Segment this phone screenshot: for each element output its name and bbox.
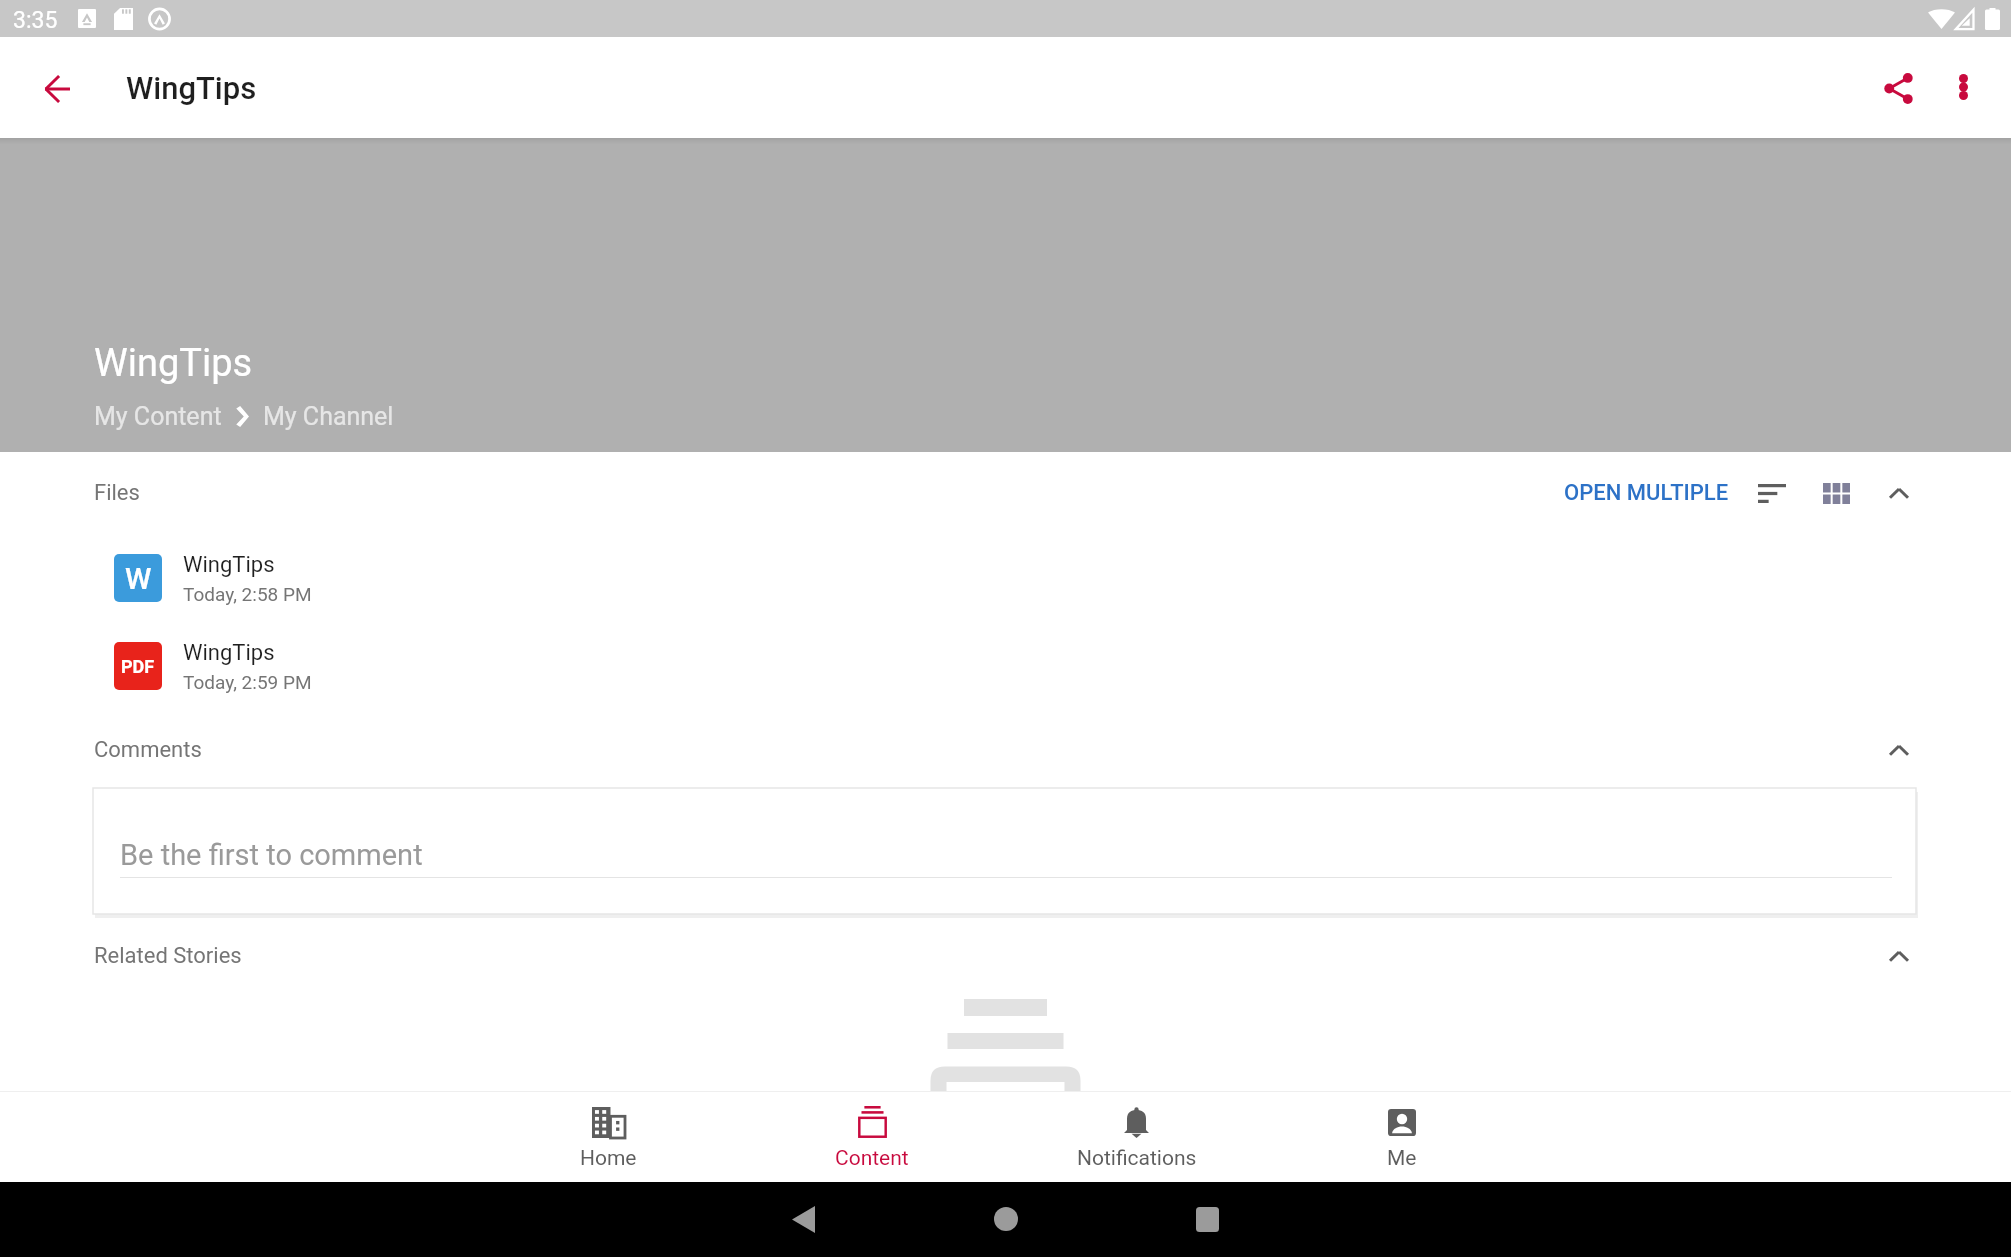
button[interactable]: My Channel bbox=[263, 402, 394, 431]
button[interactable]: W bbox=[0, 534, 2011, 622]
staticText: Notifications bbox=[1077, 1146, 1197, 1171]
button[interactable]: Content bbox=[740, 1091, 1004, 1182]
button[interactable]: Collapse Comments bbox=[1875, 726, 1923, 774]
button[interactable]: Home bbox=[974, 1187, 1038, 1251]
staticText: Today, 2:59 PM bbox=[183, 671, 312, 693]
staticText: WingTips bbox=[94, 341, 253, 386]
staticText: WingTips bbox=[183, 552, 275, 578]
button[interactable]: Back bbox=[771, 1187, 835, 1251]
button[interactable]: Recent apps bbox=[1175, 1187, 1239, 1251]
staticText: Related Stories bbox=[94, 943, 242, 969]
staticText: Comments bbox=[94, 737, 202, 763]
staticText: OPEN MULTIPLE bbox=[1564, 480, 1729, 506]
staticText: Home bbox=[580, 1146, 637, 1171]
button[interactable]: OPEN MULTIPLE bbox=[1556, 470, 1737, 516]
button[interactable]: Grid view bbox=[1812, 469, 1860, 517]
staticText: WingTips bbox=[126, 70, 257, 106]
staticText: Content bbox=[835, 1146, 909, 1171]
button[interactable]: Me bbox=[1269, 1091, 1534, 1182]
button[interactable]: Be the first to comment bbox=[93, 788, 1916, 914]
staticText: WingTips bbox=[183, 640, 275, 666]
staticText: Files bbox=[94, 480, 140, 506]
staticText: PDF bbox=[121, 656, 155, 677]
staticText: Me bbox=[1387, 1146, 1417, 1171]
button[interactable]: Notifications bbox=[1004, 1091, 1269, 1182]
button[interactable]: Collapse Files bbox=[1875, 469, 1923, 517]
staticText: Today, 2:58 PM bbox=[183, 583, 312, 605]
button[interactable]: PDF bbox=[0, 622, 2011, 710]
button[interactable]: My Content bbox=[94, 402, 222, 431]
staticText: 3:35 bbox=[13, 7, 58, 34]
button[interactable]: Collapse Related Stories bbox=[1875, 932, 1923, 980]
staticText: Be the first to comment bbox=[120, 838, 423, 872]
button[interactable]: More options bbox=[1938, 62, 1988, 112]
button[interactable]: Share bbox=[1873, 63, 1923, 113]
staticText: W bbox=[125, 561, 152, 596]
button[interactable]: Navigate up bbox=[32, 64, 82, 114]
button[interactable]: Sort bbox=[1748, 469, 1796, 517]
button[interactable]: Home bbox=[476, 1091, 740, 1182]
